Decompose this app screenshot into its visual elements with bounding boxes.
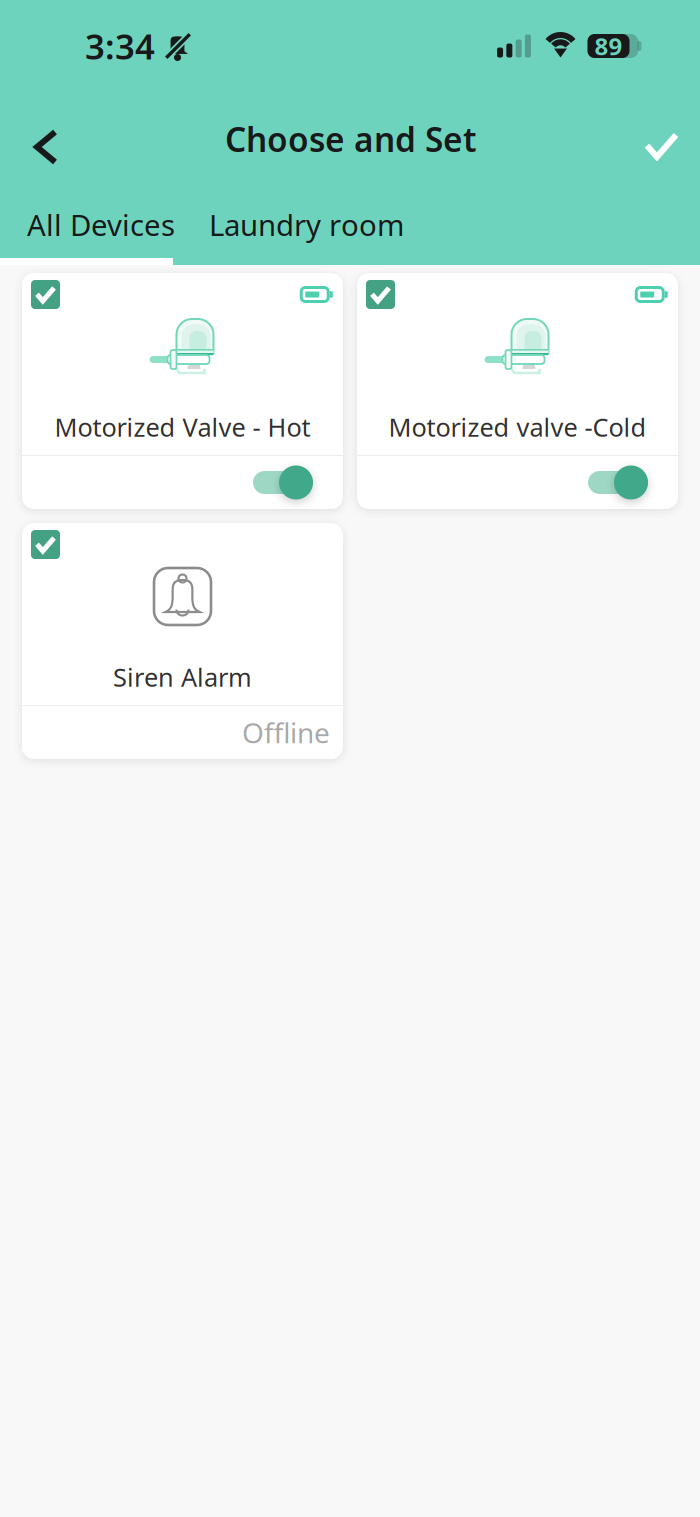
staticText: 89: [594, 30, 622, 62]
staticText: Motorized valve -Cold: [388, 410, 646, 444]
button[interactable]: Laundry room: [209, 179, 434, 265]
button[interactable]: Motorized Valve - Hot: [22, 273, 343, 509]
staticText: Motorized Valve - Hot: [54, 410, 310, 444]
staticText: Laundry room: [209, 205, 404, 244]
button[interactable]: All Devices: [0, 179, 209, 265]
button[interactable]: Confirm: [621, 92, 700, 186]
staticText: All Devices: [27, 205, 175, 244]
staticText: Siren Alarm: [113, 660, 252, 694]
staticText: 3:34: [85, 23, 155, 69]
button[interactable]: Back: [0, 94, 81, 184]
button[interactable]: Motorized valve -Cold: [357, 273, 678, 509]
button[interactable]: Siren Alarm: [22, 523, 343, 759]
staticText: Choose and Set: [225, 117, 477, 161]
staticText: Offline: [242, 714, 330, 751]
